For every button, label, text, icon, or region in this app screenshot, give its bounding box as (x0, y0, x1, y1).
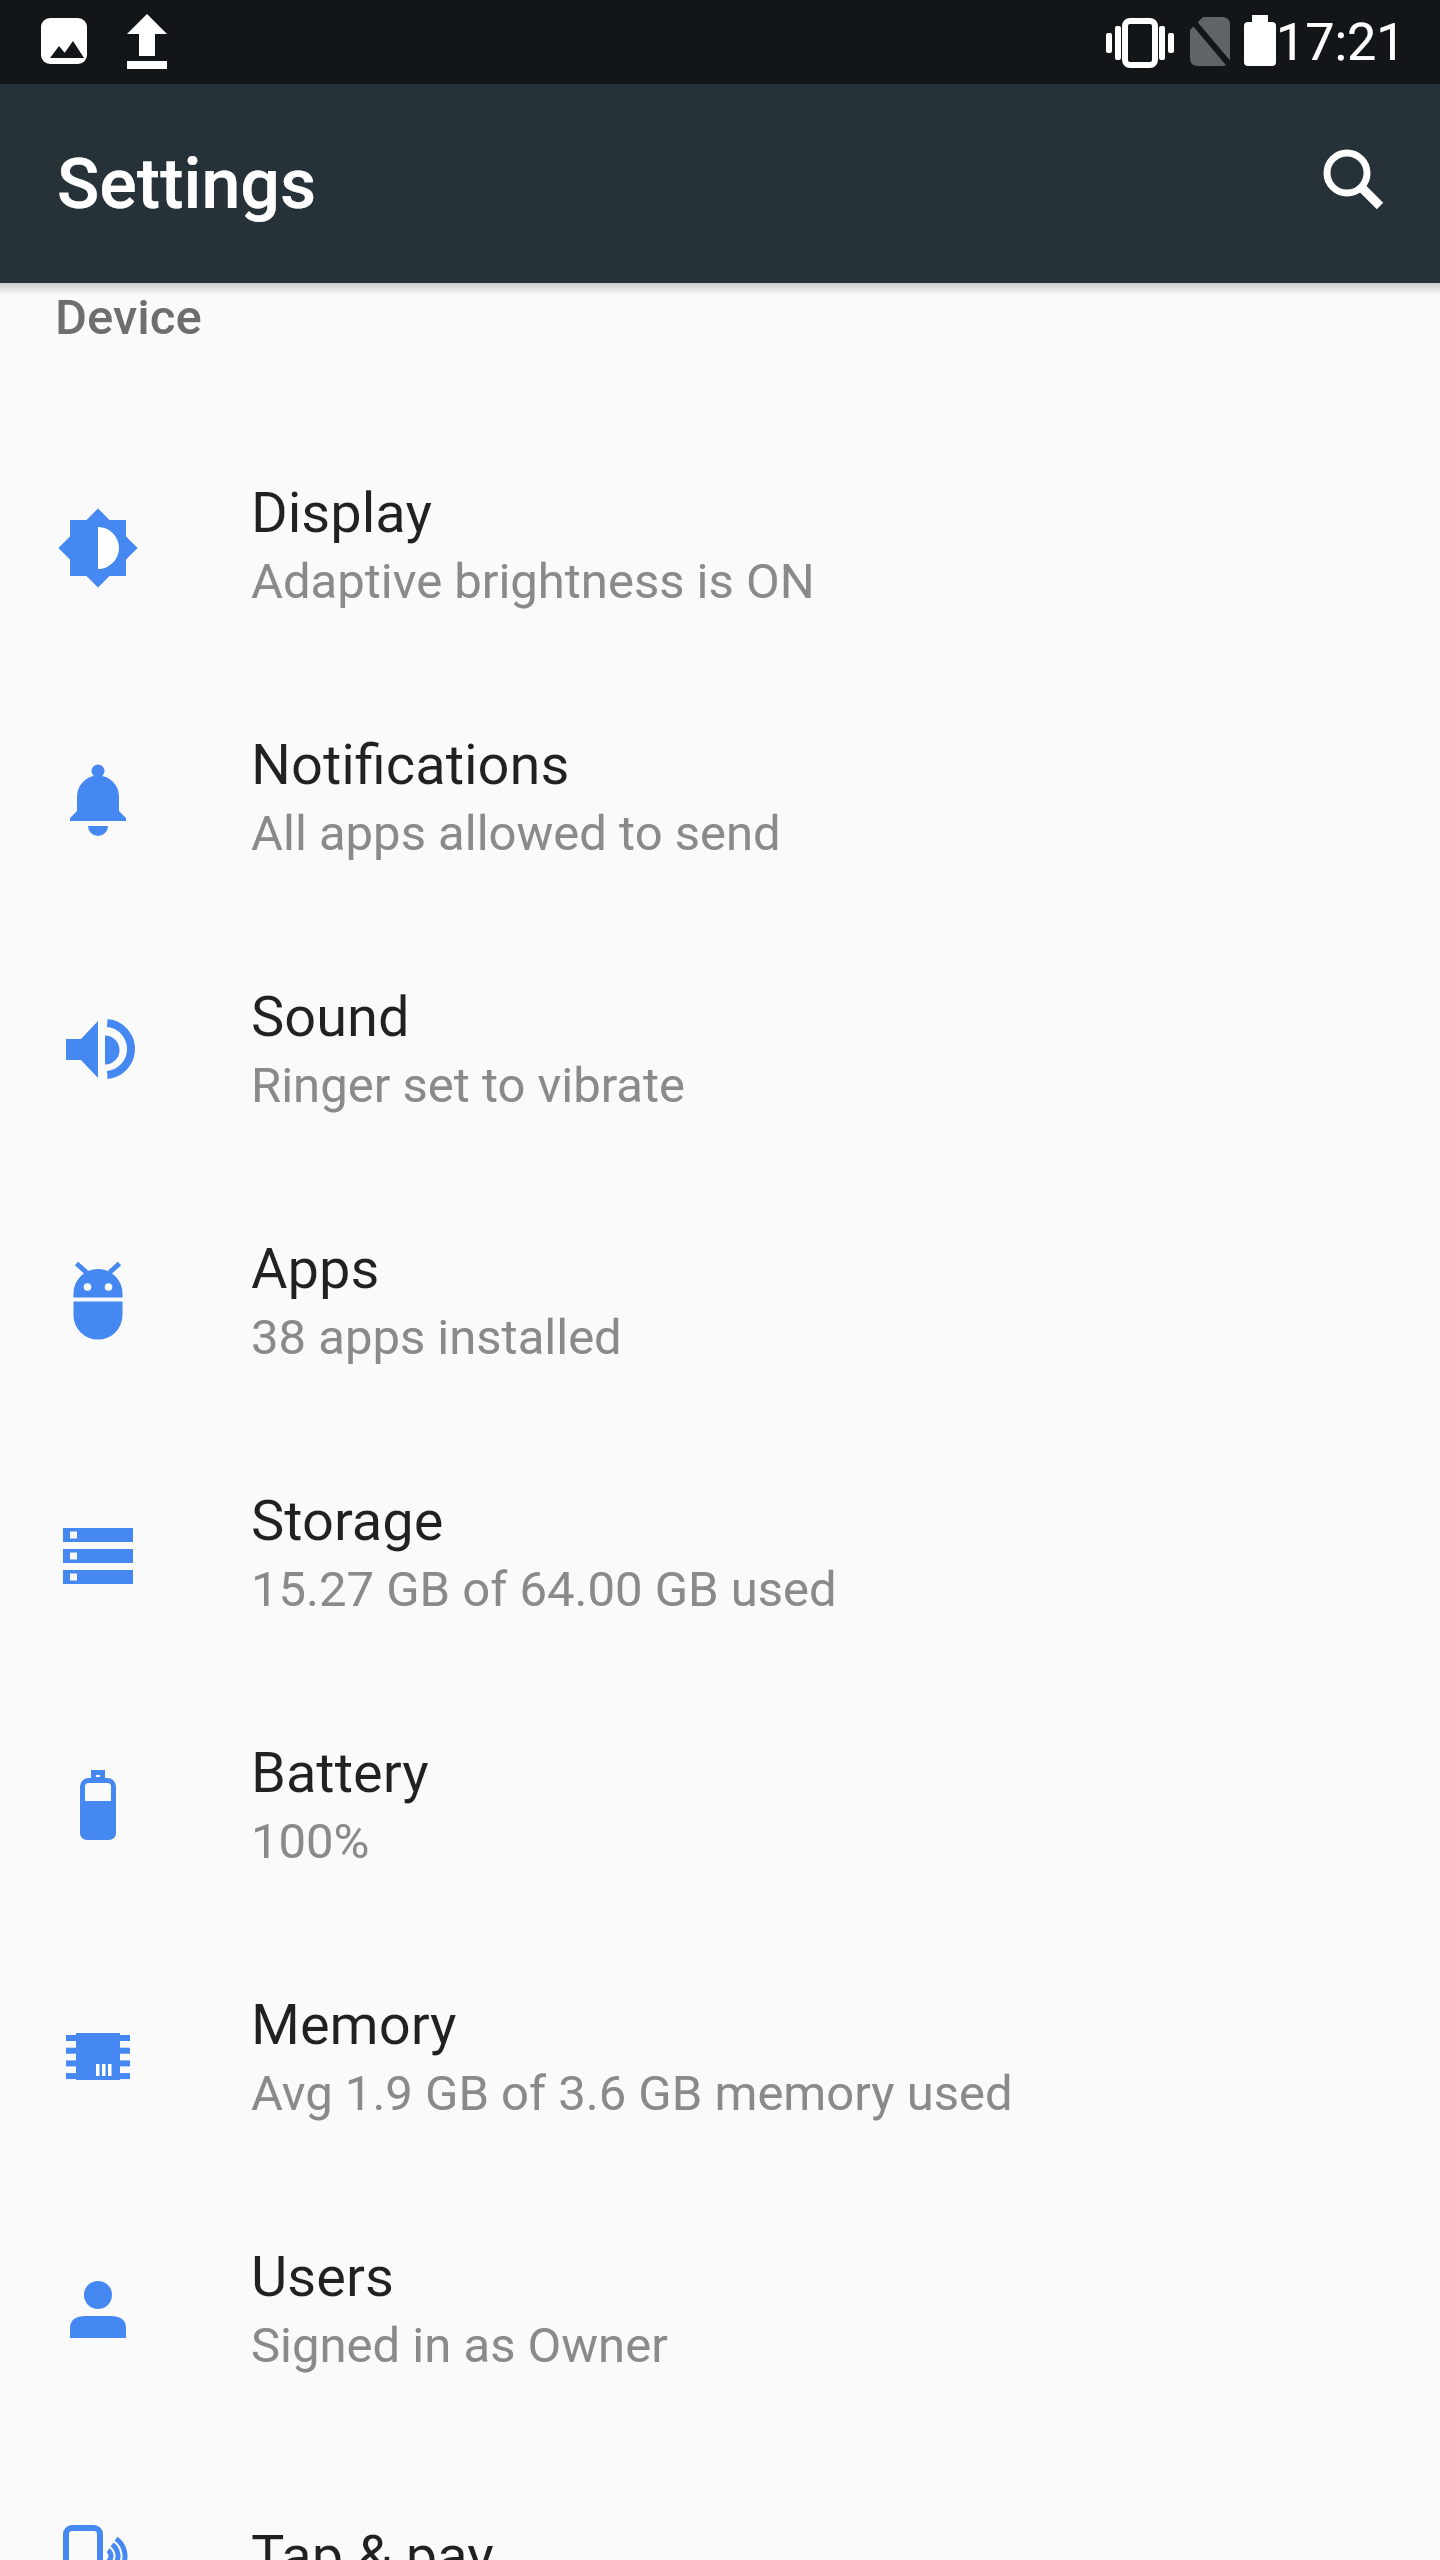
staticText: Settings (57, 143, 317, 225)
button[interactable]: Tap & pay (0, 2438, 1440, 2560)
staticText: 15.27 GB of 64.00 GB used (251, 1561, 837, 1618)
staticText: Tap & pay (251, 2523, 494, 2560)
staticText: Notifications (251, 732, 570, 798)
staticText: 38 apps installed (251, 1309, 622, 1366)
staticText: Sound (251, 984, 410, 1050)
staticText: All apps allowed to send (251, 805, 781, 862)
staticText: Display (251, 480, 432, 546)
staticText: Users (251, 2244, 394, 2310)
button[interactable]: Users (0, 2186, 1440, 2438)
button[interactable]: Notifications (0, 674, 1440, 926)
staticText: Apps (251, 1236, 380, 1302)
staticText: Battery (251, 1740, 429, 1806)
staticText: Ringer set to vibrate (251, 1057, 686, 1114)
button[interactable]: Battery (0, 1682, 1440, 1934)
staticText: Memory (251, 1992, 457, 2058)
staticText: 100% (251, 1813, 370, 1870)
staticText: Signed in as Owner (251, 2317, 668, 2374)
button[interactable]: Memory (0, 1934, 1440, 2186)
staticText: Device (55, 289, 202, 346)
staticText: Adaptive brightness is ON (251, 553, 815, 610)
button[interactable]: Storage (0, 1430, 1440, 1682)
button[interactable] (1304, 136, 1400, 232)
button[interactable]: Apps (0, 1178, 1440, 1430)
staticText: Storage (251, 1488, 444, 1554)
button[interactable]: Display (0, 422, 1440, 674)
staticText: 17:21 (1276, 12, 1406, 73)
staticText: Avg 1.9 GB of 3.6 GB memory used (251, 2065, 1013, 2122)
button[interactable]: Sound (0, 926, 1440, 1178)
